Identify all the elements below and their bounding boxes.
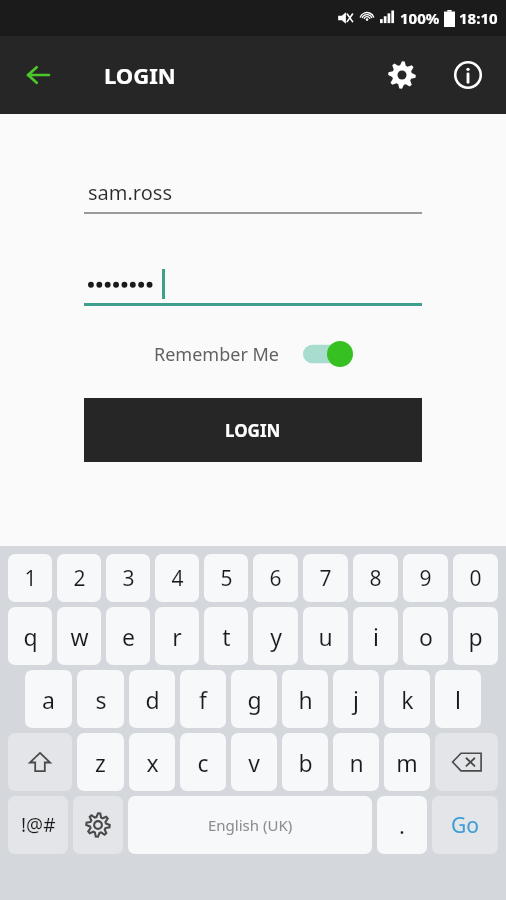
staticText: o bbox=[419, 621, 433, 652]
staticText: !@# bbox=[21, 812, 56, 838]
staticText: 5 bbox=[220, 564, 233, 593]
staticText: 9 bbox=[419, 564, 432, 593]
button[interactable]: 2 bbox=[57, 554, 101, 602]
button[interactable]: 3 bbox=[106, 554, 150, 602]
button[interactable]: e bbox=[106, 607, 150, 665]
button[interactable]: y bbox=[253, 607, 298, 665]
button[interactable]: v bbox=[231, 733, 277, 791]
staticText: 18:10 bbox=[459, 8, 498, 28]
staticText: i bbox=[373, 621, 379, 652]
button[interactable]: m bbox=[384, 733, 430, 791]
staticText: b bbox=[298, 747, 313, 778]
staticText: d bbox=[145, 684, 160, 715]
button[interactable]: Back bbox=[12, 49, 64, 101]
button[interactable]: 8 bbox=[353, 554, 398, 602]
button[interactable]: Remember Me bbox=[84, 332, 422, 376]
button[interactable] bbox=[84, 264, 422, 306]
button[interactable]: . bbox=[377, 796, 427, 854]
staticText: v bbox=[248, 747, 260, 778]
staticText: c bbox=[197, 747, 209, 778]
button[interactable]: 1 bbox=[8, 554, 52, 602]
staticText: z bbox=[95, 747, 106, 778]
button[interactable]: t bbox=[204, 607, 248, 665]
button[interactable]: 7 bbox=[303, 554, 348, 602]
button[interactable]: p bbox=[453, 607, 498, 665]
staticText: w bbox=[70, 621, 89, 652]
staticText: t bbox=[222, 621, 231, 652]
staticText: 100% bbox=[400, 8, 440, 28]
staticText: l bbox=[455, 684, 461, 715]
button[interactable]: r bbox=[155, 607, 199, 665]
staticText: e bbox=[122, 621, 135, 652]
button[interactable]: Keyboard settings bbox=[73, 796, 123, 854]
button[interactable]: Shift bbox=[8, 733, 72, 791]
staticText: LOGIN bbox=[104, 60, 176, 90]
staticText: 7 bbox=[319, 564, 332, 593]
button[interactable]: w bbox=[57, 607, 101, 665]
staticText: x bbox=[146, 747, 159, 778]
staticText: LOGIN bbox=[225, 419, 281, 442]
button[interactable]: Info bbox=[444, 51, 492, 99]
staticText: r bbox=[172, 621, 182, 652]
staticText: 6 bbox=[269, 564, 282, 593]
button[interactable]: k bbox=[384, 670, 430, 728]
staticText: q bbox=[23, 621, 38, 652]
staticText: Remember Me bbox=[154, 342, 279, 367]
button[interactable]: 9 bbox=[403, 554, 448, 602]
staticText: s bbox=[95, 684, 107, 715]
staticText: 8 bbox=[369, 564, 382, 593]
staticText: Go bbox=[451, 811, 479, 840]
button[interactable]: !@# bbox=[8, 796, 68, 854]
staticText: m bbox=[396, 747, 418, 778]
staticText: p bbox=[468, 621, 483, 652]
button[interactable]: n bbox=[333, 733, 379, 791]
button[interactable]: g bbox=[231, 670, 277, 728]
button[interactable]: b bbox=[282, 733, 328, 791]
button[interactable]: 4 bbox=[155, 554, 199, 602]
staticText: 2 bbox=[73, 564, 86, 593]
staticText: 4 bbox=[171, 564, 184, 593]
button[interactable]: d bbox=[129, 670, 175, 728]
staticText: u bbox=[318, 621, 333, 652]
staticText: g bbox=[247, 684, 262, 715]
button[interactable]: Settings bbox=[378, 51, 426, 99]
staticText: h bbox=[298, 684, 313, 715]
button[interactable]: s bbox=[77, 670, 124, 728]
staticText: a bbox=[42, 684, 55, 715]
staticText: 1 bbox=[24, 564, 37, 593]
button[interactable]: z bbox=[77, 733, 124, 791]
staticText: f bbox=[199, 684, 207, 715]
button[interactable]: 6 bbox=[253, 554, 298, 602]
button[interactable]: l bbox=[435, 670, 481, 728]
button[interactable]: f bbox=[180, 670, 226, 728]
staticText: n bbox=[349, 747, 364, 778]
button[interactable]: LOGIN bbox=[84, 398, 422, 462]
button[interactable]: 5 bbox=[204, 554, 248, 602]
staticText: j bbox=[353, 684, 359, 715]
staticText: sam.ross bbox=[88, 179, 172, 206]
button[interactable]: English (UK) bbox=[128, 796, 372, 854]
button[interactable]: j bbox=[333, 670, 379, 728]
button[interactable]: u bbox=[303, 607, 348, 665]
staticText: k bbox=[401, 684, 414, 715]
button[interactable]: h bbox=[282, 670, 328, 728]
button[interactable]: sam.ross bbox=[84, 172, 422, 214]
button[interactable]: o bbox=[403, 607, 448, 665]
staticText: y bbox=[270, 621, 282, 652]
button[interactable]: a bbox=[25, 670, 72, 728]
button[interactable]: x bbox=[129, 733, 175, 791]
button[interactable]: 0 bbox=[453, 554, 498, 602]
staticText: 3 bbox=[122, 564, 135, 593]
button[interactable]: Backspace bbox=[435, 733, 498, 791]
button[interactable]: q bbox=[8, 607, 52, 665]
staticText: English (UK) bbox=[208, 815, 293, 835]
button[interactable]: i bbox=[353, 607, 398, 665]
button[interactable]: Go bbox=[432, 796, 498, 854]
staticText: 0 bbox=[469, 564, 482, 593]
staticText: . bbox=[399, 810, 405, 840]
button[interactable]: c bbox=[180, 733, 226, 791]
